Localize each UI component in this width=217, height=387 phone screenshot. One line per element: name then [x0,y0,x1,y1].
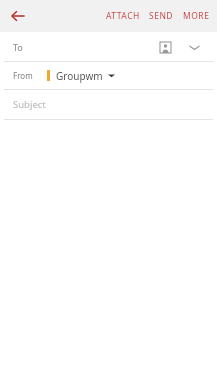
button[interactable]: Subject [0,90,217,119]
button[interactable]: ATTACH [104,6,142,26]
staticText: Subject [13,98,46,111]
button[interactable]: Pick contact [156,38,174,56]
staticText: To [13,41,23,53]
button[interactable]: From [0,62,217,89]
staticText: From [13,70,33,81]
button[interactable]: Expand recipients [184,37,204,57]
staticText: Groupwm [56,69,103,83]
button[interactable]: Back [5,3,31,29]
button[interactable]: SEND [147,6,176,26]
button[interactable]: To [0,32,217,61]
staticText: SEND [149,10,174,22]
staticText: ATTACH [106,10,140,22]
button[interactable]: MORE [181,6,212,26]
staticText: MORE [183,10,210,22]
